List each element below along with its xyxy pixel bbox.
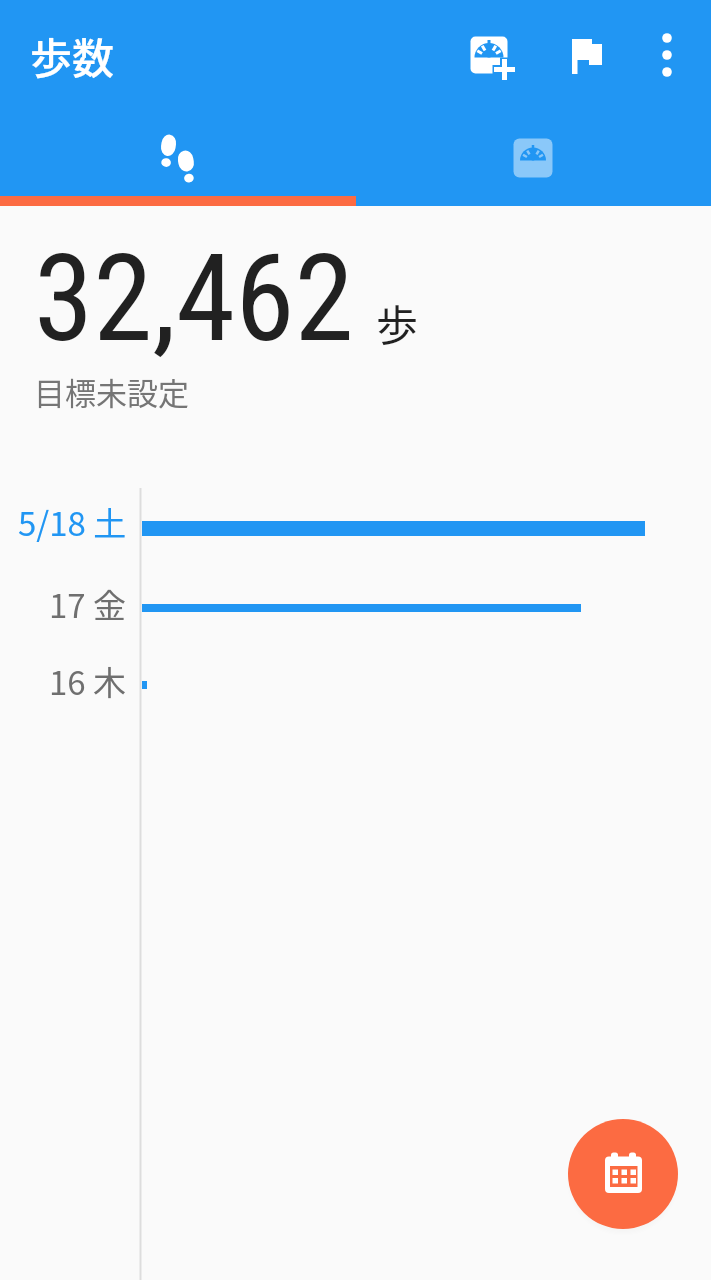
button[interactable] xyxy=(552,19,624,91)
staticText: 17 金 xyxy=(49,580,127,628)
staticText: 16 木 xyxy=(49,657,127,705)
button[interactable] xyxy=(0,110,355,206)
button[interactable] xyxy=(631,19,703,91)
button[interactable] xyxy=(453,19,525,91)
staticText: 目標未設定 xyxy=(34,369,189,414)
staticText: 歩 xyxy=(376,292,419,353)
staticText: 歩数 xyxy=(30,25,115,86)
button[interactable] xyxy=(355,110,711,206)
button[interactable] xyxy=(568,1119,678,1229)
staticText: 5/18 土 xyxy=(18,498,127,546)
staticText: 32,462 xyxy=(34,229,354,370)
